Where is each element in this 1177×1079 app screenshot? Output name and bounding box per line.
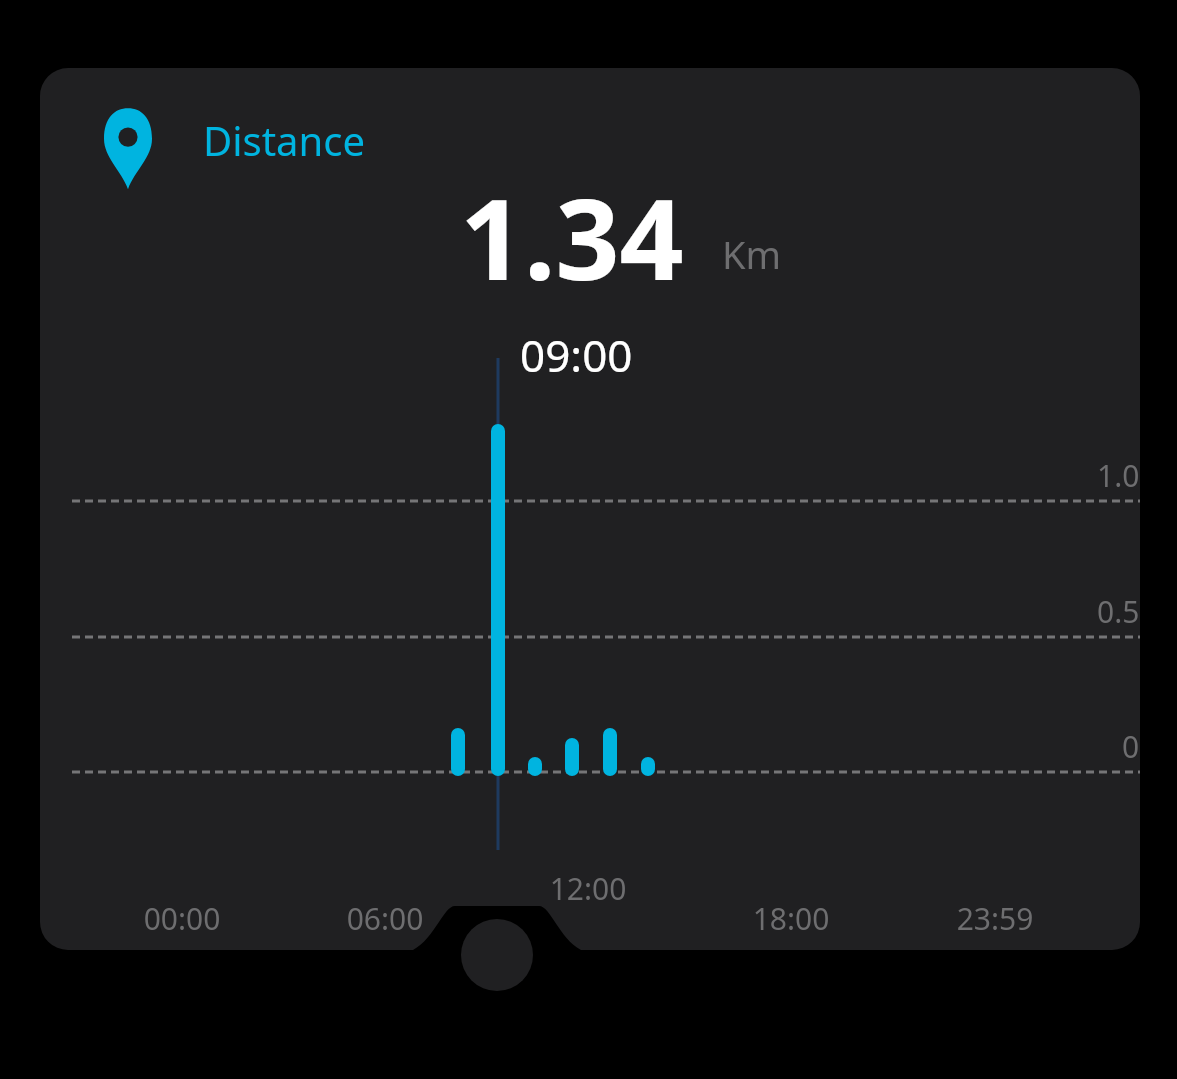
button[interactable]: Distance statistics card [0, 0, 1177, 1079]
